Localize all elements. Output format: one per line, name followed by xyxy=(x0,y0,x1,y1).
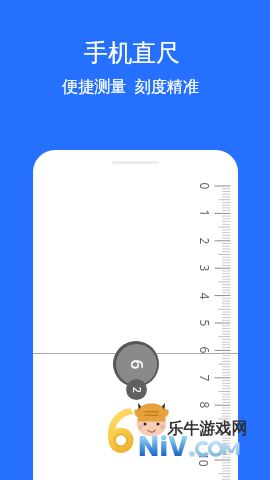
staticText: 5 xyxy=(196,319,212,326)
staticText: 2 xyxy=(196,237,212,244)
staticText: 10 xyxy=(196,453,212,467)
staticText: 6 xyxy=(125,359,148,369)
button[interactable]: Measure handle xyxy=(113,341,159,387)
staticText: 2 xyxy=(130,387,144,393)
button[interactable]: Fine adjust xyxy=(126,379,147,400)
staticText: 6 xyxy=(196,346,212,353)
staticText: 7 xyxy=(196,374,212,381)
staticText: 1 xyxy=(196,209,212,216)
staticText: 乐牛游戏网 xyxy=(167,419,247,439)
staticText: 4 xyxy=(196,292,212,299)
staticText: 9 xyxy=(196,429,212,436)
staticText: 便捷测量 刻度精准 xyxy=(62,75,199,97)
staticText: 8 xyxy=(196,401,212,408)
button[interactable]: 0 xyxy=(33,150,238,480)
staticText: 0 xyxy=(196,182,212,189)
staticText: 3 xyxy=(196,264,212,271)
staticText: 手机直尺 xyxy=(84,38,180,68)
